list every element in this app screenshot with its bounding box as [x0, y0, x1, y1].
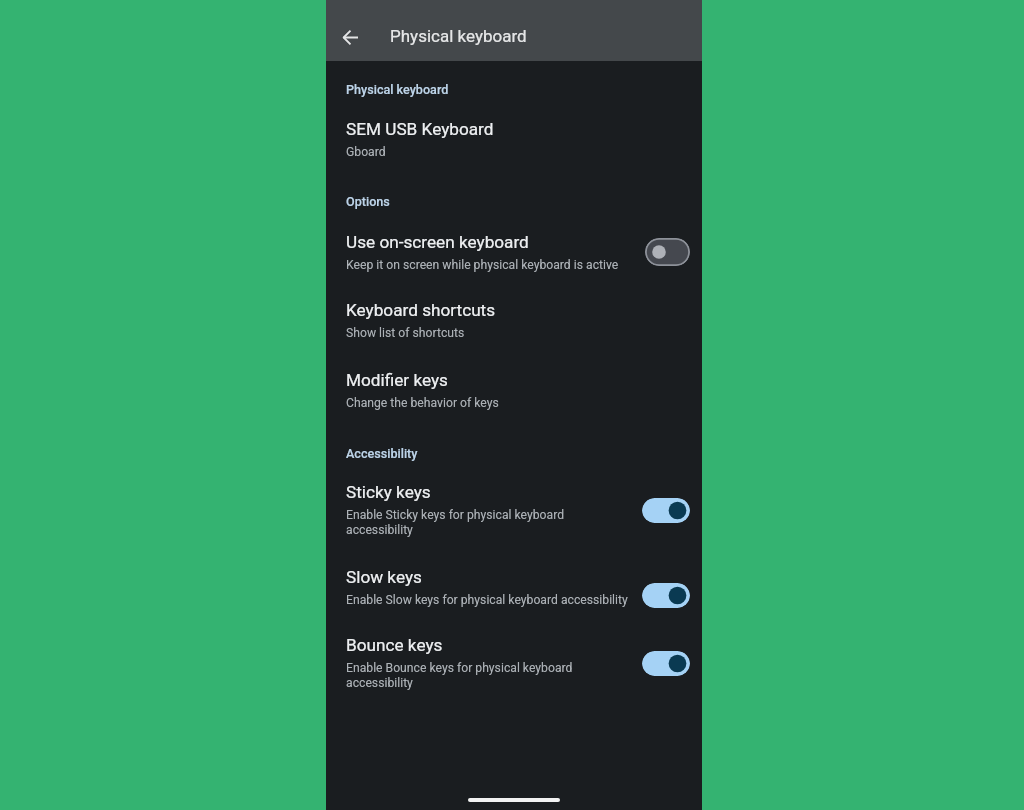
button[interactable]: Setting on [642, 498, 690, 523]
button[interactable]: Modifier keys [326, 370, 702, 414]
staticText: Enable Slow keys for physical keyboard a… [346, 592, 628, 607]
staticText: Bounce keys [346, 635, 443, 655]
staticText: Enable Bounce keys for physical keyboard… [346, 660, 631, 690]
staticText: Enable Sticky keys for physical keyboard… [346, 507, 631, 537]
staticText: Physical keyboard [390, 26, 527, 46]
staticText: Options [346, 194, 390, 209]
staticText: SEM USB Keyboard [346, 119, 494, 139]
staticText: Keyboard shortcuts [346, 300, 496, 320]
button[interactable]: Navigate up [330, 17, 370, 57]
staticText: Show list of shortcuts [346, 325, 465, 340]
staticText: Physical keyboard [346, 82, 449, 97]
staticText: Slow keys [346, 567, 422, 587]
button[interactable]: Setting on [642, 651, 690, 676]
button[interactable]: Setting on [642, 583, 690, 608]
staticText: Accessibility [346, 446, 418, 461]
button[interactable]: Sticky keys [326, 482, 702, 542]
button[interactable]: Keyboard shortcuts [326, 300, 702, 344]
button[interactable]: Setting off [645, 238, 690, 266]
button[interactable]: Use on-screen keyboard [326, 232, 702, 292]
staticText: Keep it on screen while physical keyboar… [346, 257, 619, 272]
button[interactable]: Slow keys [326, 567, 702, 627]
staticText: Gboard [346, 144, 386, 159]
staticText: Modifier keys [346, 370, 448, 390]
staticText: Sticky keys [346, 482, 431, 502]
staticText: Use on-screen keyboard [346, 232, 529, 252]
button[interactable]: Bounce keys [326, 635, 702, 695]
button[interactable]: SEM USB Keyboard [326, 119, 702, 163]
staticText: Change the behavior of keys [346, 395, 499, 410]
